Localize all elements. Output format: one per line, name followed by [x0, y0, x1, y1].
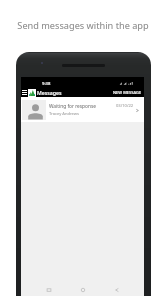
staticText: 03/10/22 [116, 103, 134, 109]
button[interactable]: Open navigation menu [22, 90, 27, 95]
button[interactable]: Recent apps [44, 285, 54, 295]
staticText: NEW MESSAGE [113, 90, 142, 94]
button[interactable]: Open conversation [136, 109, 139, 112]
staticText: Messages [37, 89, 62, 96]
button[interactable]: Back [112, 285, 122, 295]
staticText: 9:38 [42, 81, 51, 87]
staticText: Send messages within the app [0, 19, 166, 32]
button[interactable]: Messages app icon [28, 89, 36, 97]
button[interactable] [21, 97, 144, 122]
button[interactable]: NEW MESSAGE [111, 87, 144, 97]
button[interactable] [21, 87, 144, 97]
staticText: Tracey Andrews [49, 111, 79, 117]
staticText: Waiting for response [49, 103, 96, 110]
button[interactable]: Home [78, 285, 88, 295]
